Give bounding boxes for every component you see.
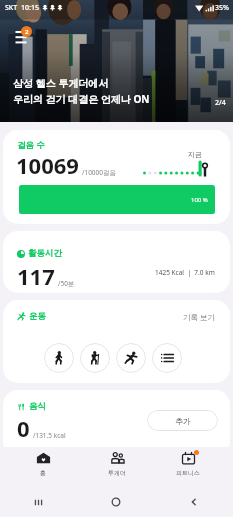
button[interactable]: Hiking: [80, 343, 110, 373]
staticText: 100 %: [191, 196, 208, 204]
staticText: 2: [25, 28, 29, 36]
button[interactable]: 기록 보기: [183, 312, 215, 322]
staticText: 운동: [29, 311, 46, 322]
staticText: 활동시간: [28, 248, 62, 259]
staticText: 홈: [40, 469, 46, 477]
staticText: 우리의 걷기 대결은 언제나 ON: [13, 92, 150, 106]
staticText: 음식: [29, 401, 46, 412]
staticText: /50분: [58, 279, 75, 288]
staticText: 10:15: [21, 3, 39, 13]
staticText: 걸음 수: [17, 139, 45, 151]
staticText: 10069: [16, 150, 79, 180]
button[interactable]: Running: [116, 343, 146, 373]
staticText: 지금: [188, 150, 202, 159]
button[interactable]: 추가: [147, 410, 218, 431]
staticText: 투게더: [108, 469, 126, 477]
staticText: 0: [17, 413, 30, 443]
button[interactable]: 투게더: [93, 451, 141, 483]
staticText: SKT: [5, 3, 18, 13]
staticText: 추가: [175, 416, 191, 426]
staticText: 1425 Kcal | 7.0 km: [155, 268, 215, 277]
staticText: /10000걸음: [82, 168, 117, 177]
staticText: 2/4: [215, 98, 226, 108]
staticText: /131.5 kcal: [33, 431, 66, 440]
staticText: 피트니스: [176, 469, 200, 477]
staticText: 117: [17, 261, 55, 291]
button[interactable]: 피트니스: [164, 451, 212, 483]
button[interactable]: Menu: [14, 27, 34, 47]
staticText: 삼성 헬스 투게더에서: [13, 76, 109, 90]
button[interactable]: More exercises: [152, 343, 182, 373]
button[interactable]: Walking: [44, 343, 74, 373]
button[interactable]: 홈: [19, 451, 67, 483]
staticText: 35%: [215, 3, 229, 13]
